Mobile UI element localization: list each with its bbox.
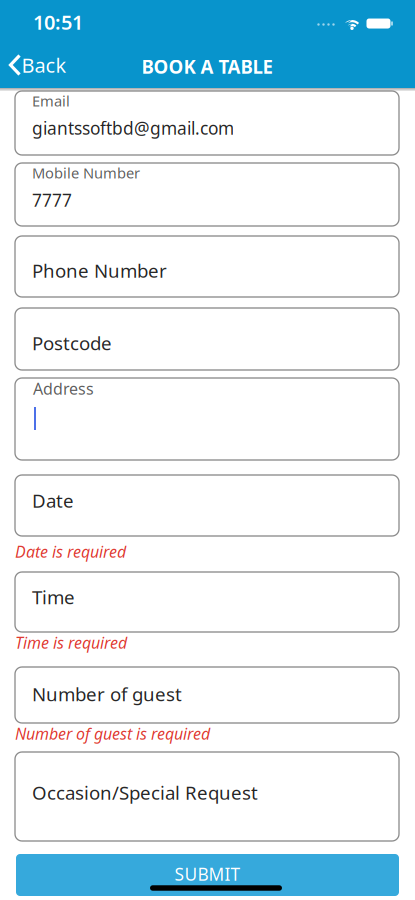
staticText: 10:51 <box>33 9 83 35</box>
staticText: Back <box>21 52 66 78</box>
button[interactable]: Phone Number <box>15 236 399 297</box>
staticText: Email <box>32 91 70 110</box>
button[interactable]: SUBMIT <box>16 854 399 896</box>
button[interactable]: Back <box>1 46 66 84</box>
button[interactable]: Time <box>15 572 399 632</box>
staticText: Time <box>32 585 75 609</box>
staticText: 7777 <box>32 188 72 211</box>
staticText: SUBMIT <box>174 862 240 885</box>
staticText: Postcode <box>32 331 112 355</box>
button[interactable]: Address <box>15 378 399 460</box>
button[interactable]: Date <box>15 475 399 536</box>
button[interactable]: Postcode <box>15 308 399 370</box>
staticText: Phone Number <box>32 258 167 283</box>
staticText: Date is required <box>15 541 126 562</box>
staticText: Occasion/Special Request <box>32 780 258 805</box>
staticText: giantssoftbd@gmail.com <box>32 116 234 139</box>
staticText: Date <box>32 488 74 513</box>
button[interactable]: Email <box>15 91 399 155</box>
staticText: BOOK A TABLE <box>141 54 272 79</box>
button[interactable]: Occasion/Special Request <box>15 752 399 841</box>
staticText: Number of guest is required <box>15 723 210 744</box>
staticText: Address <box>33 378 94 399</box>
staticText: Time is required <box>15 632 127 653</box>
staticText: Number of guest <box>32 682 182 706</box>
staticText: Mobile Number <box>32 163 140 182</box>
button[interactable]: Mobile Number <box>15 163 399 226</box>
button[interactable]: Number of guest <box>15 667 399 723</box>
